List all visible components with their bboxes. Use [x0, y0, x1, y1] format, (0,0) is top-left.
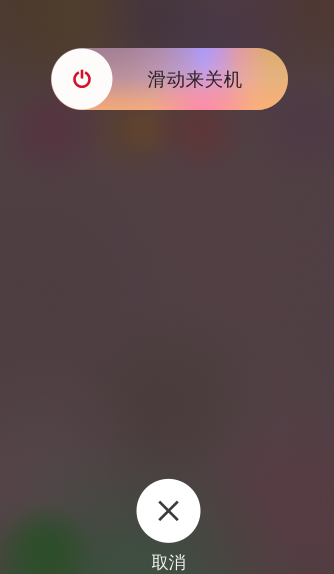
button[interactable]: 取消: [136, 479, 200, 573]
staticText: 取消: [151, 552, 185, 573]
button[interactable]: 滑动来关机: [51, 48, 288, 110]
staticText: 滑动来关机: [147, 68, 242, 91]
